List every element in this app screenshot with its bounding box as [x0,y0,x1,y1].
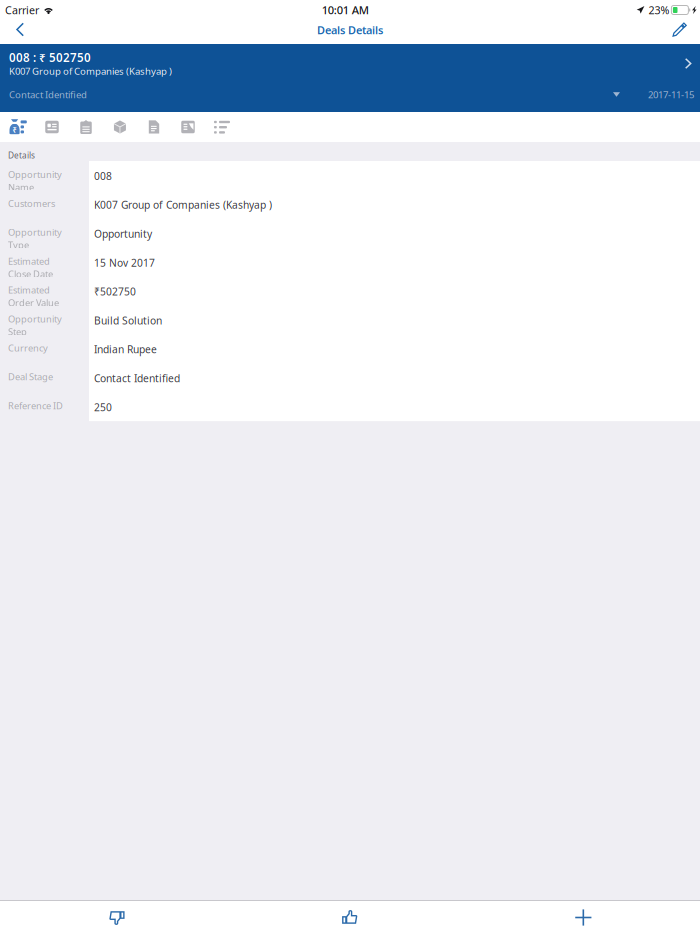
staticText: 008 [94,169,112,183]
staticText: Customers [8,197,55,210]
staticText: ₹502750 [94,285,136,299]
staticText: Currency [8,341,48,354]
button[interactable]: 008 : ₹ 502750 [0,44,700,112]
button[interactable]: Deal [1,112,35,142]
staticText: K007 Group of Companies (Kashyap ) [9,64,172,77]
staticText: Opportunity Name [8,168,62,193]
staticText: Contact Identified [94,371,180,385]
staticText: Build Solution [94,313,162,327]
staticText: Indian Rupee [94,342,157,356]
button[interactable]: Back [0,20,46,44]
button[interactable]: Add [467,901,700,934]
button[interactable]: Contacts [35,112,69,142]
button[interactable]: Edit [651,20,700,44]
staticText: Reference ID [8,399,63,412]
staticText: Deal Stage [8,370,53,383]
staticText: 10:01 AM [322,2,369,18]
staticText: Carrier [5,3,39,17]
button[interactable]: Quotes [171,112,205,142]
staticText: Estimated Close Date [8,255,53,280]
staticText: Details [8,150,35,161]
button[interactable]: Activities [205,112,239,142]
staticText: Opportunity Step [8,312,62,338]
button[interactable]: Products [103,112,137,142]
staticText: Contact Identified [9,88,87,101]
staticText: Estimated Order Value [8,284,59,309]
staticText: K007 Group of Companies (Kashyap ) [94,198,272,212]
staticText: 15 Nov 2017 [94,256,155,270]
button[interactable]: Like [233,901,467,934]
staticText: 008 : ₹ 502750 [9,50,91,65]
staticText: Deals Details [317,23,383,37]
staticText: 2017-11-15 [648,88,694,101]
staticText: 23% [648,3,669,17]
button[interactable]: Dislike [0,901,233,934]
staticText: 250 [94,400,112,414]
staticText: Opportunity Type [8,226,62,251]
button[interactable]: Tasks [69,112,103,142]
staticText: Opportunity [94,227,152,241]
button[interactable]: Documents [137,112,171,142]
staticText: ₹ [12,125,16,135]
